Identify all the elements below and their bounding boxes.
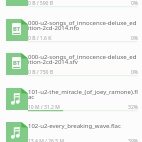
button[interactable]: Torrent file [0,19,142,54]
staticText: BT [12,25,21,33]
button[interactable]: Audio file [0,88,142,123]
staticText: ition-2cd-2014.nfo [28,24,80,32]
staticText: 0 B / 750 B [28,69,54,76]
other: Torrent file [6,53,28,75]
staticText: 102-u2-every_breaking_wave.flac [28,122,121,130]
other: Audio file [6,88,28,110]
staticText: 000-u2-songs_of_innocence-deluxe_ed [28,53,137,61]
staticText: 32% [108,104,138,111]
staticText: 39% [108,138,138,142]
staticText: 0% [108,35,138,42]
staticText: 0% [108,69,138,76]
staticText: BT [12,59,21,67]
button[interactable]: Torrent file [0,53,142,88]
button[interactable]: Audio file [0,122,142,142]
staticText: 000-u2-songs_of_innocence-deluxe_ed [28,19,137,27]
staticText: 0% [108,0,138,7]
button[interactable]: Torrent file [0,0,142,19]
staticText: 0 B / 590 B [28,0,54,7]
staticText: ac [28,93,35,101]
staticText: ition-2cd-2014.sfv [28,58,78,66]
staticText: 10 M / 31.2 M [28,104,60,111]
staticText: 101-u2-the_miracle_(of_joey_ramone).fl [28,88,138,96]
staticText: 0 B / 1.6 K [28,35,52,42]
other: Audio file [6,122,28,142]
other: Torrent file [6,19,28,41]
staticText: 13.4 M / 26.5 M [28,138,64,142]
